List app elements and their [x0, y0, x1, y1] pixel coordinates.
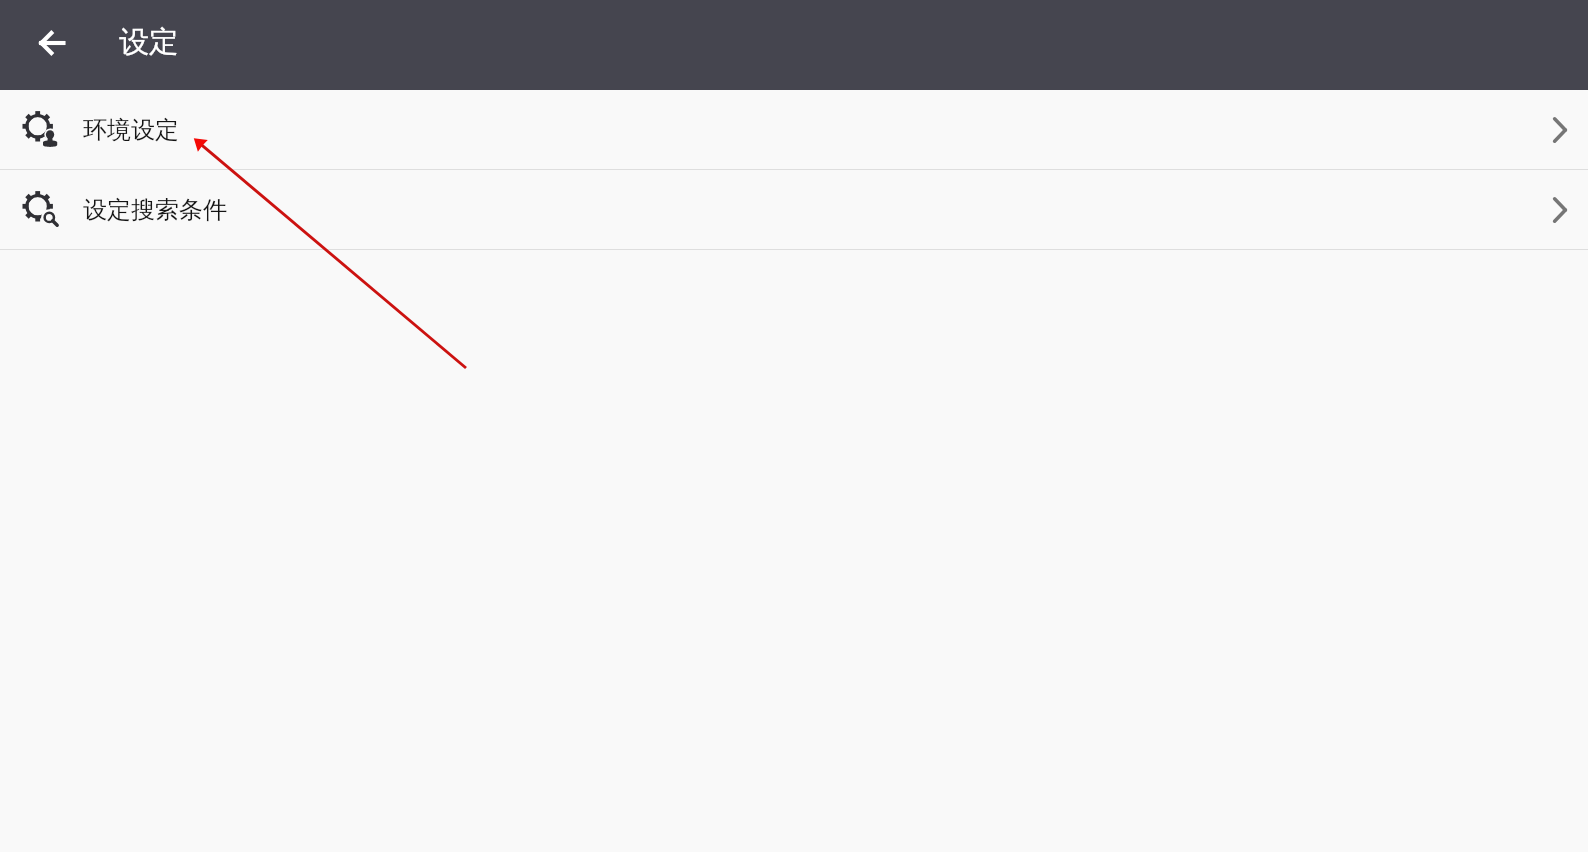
staticText: 设定 — [119, 23, 179, 61]
staticText: 设定搜索条件 — [83, 195, 227, 225]
staticText: 环境设定 — [83, 115, 179, 145]
button[interactable]: Back — [16, 16, 88, 70]
button[interactable]: 环境设定 — [0, 90, 1588, 169]
button[interactable]: 设定搜索条件 — [0, 170, 1588, 249]
